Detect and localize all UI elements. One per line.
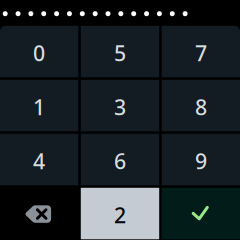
staticText: 0: [33, 39, 45, 67]
button[interactable]: 5: [81, 26, 159, 77]
button[interactable]: 4: [0, 134, 78, 185]
staticText: 4: [33, 147, 45, 175]
button[interactable]: 0: [0, 26, 78, 77]
button[interactable]: Delete: [0, 188, 78, 239]
staticText: 7: [195, 39, 207, 67]
button[interactable]: 2: [81, 188, 159, 239]
staticText: 3: [114, 93, 126, 121]
staticText: 1: [33, 93, 45, 121]
staticText: 8: [195, 93, 207, 121]
button[interactable]: 3: [81, 80, 159, 131]
button[interactable]: 9: [162, 134, 240, 185]
staticText: 5: [114, 39, 126, 67]
button[interactable]: Confirm: [162, 188, 240, 239]
staticText: 9: [195, 147, 207, 175]
button[interactable]: 8: [162, 80, 240, 131]
button[interactable]: 7: [162, 26, 240, 77]
button[interactable]: 6: [81, 134, 159, 185]
button[interactable]: 1: [0, 80, 78, 131]
staticText: 2: [114, 201, 126, 229]
staticText: 6: [114, 147, 126, 175]
